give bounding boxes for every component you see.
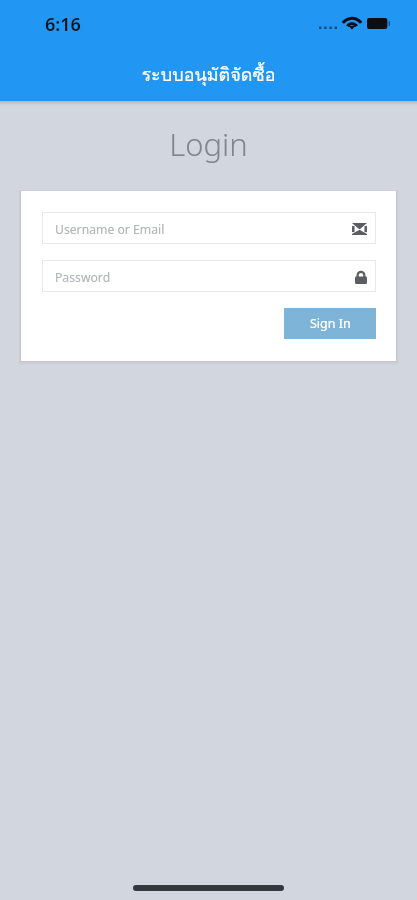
staticText: Sign In <box>310 315 351 332</box>
staticText: ระบบอนุมัติจัดซื้อ <box>141 60 276 89</box>
staticText: Password <box>55 269 111 286</box>
staticText: Login <box>0 123 417 165</box>
other: Email <box>352 223 367 235</box>
button[interactable]: Password <box>42 260 376 292</box>
other: Password <box>355 271 367 284</box>
button[interactable]: Sign In <box>284 308 376 339</box>
button[interactable]: Username or Email <box>42 212 376 244</box>
staticText: Username or Email <box>55 221 165 238</box>
staticText: 6:16 <box>45 12 81 37</box>
